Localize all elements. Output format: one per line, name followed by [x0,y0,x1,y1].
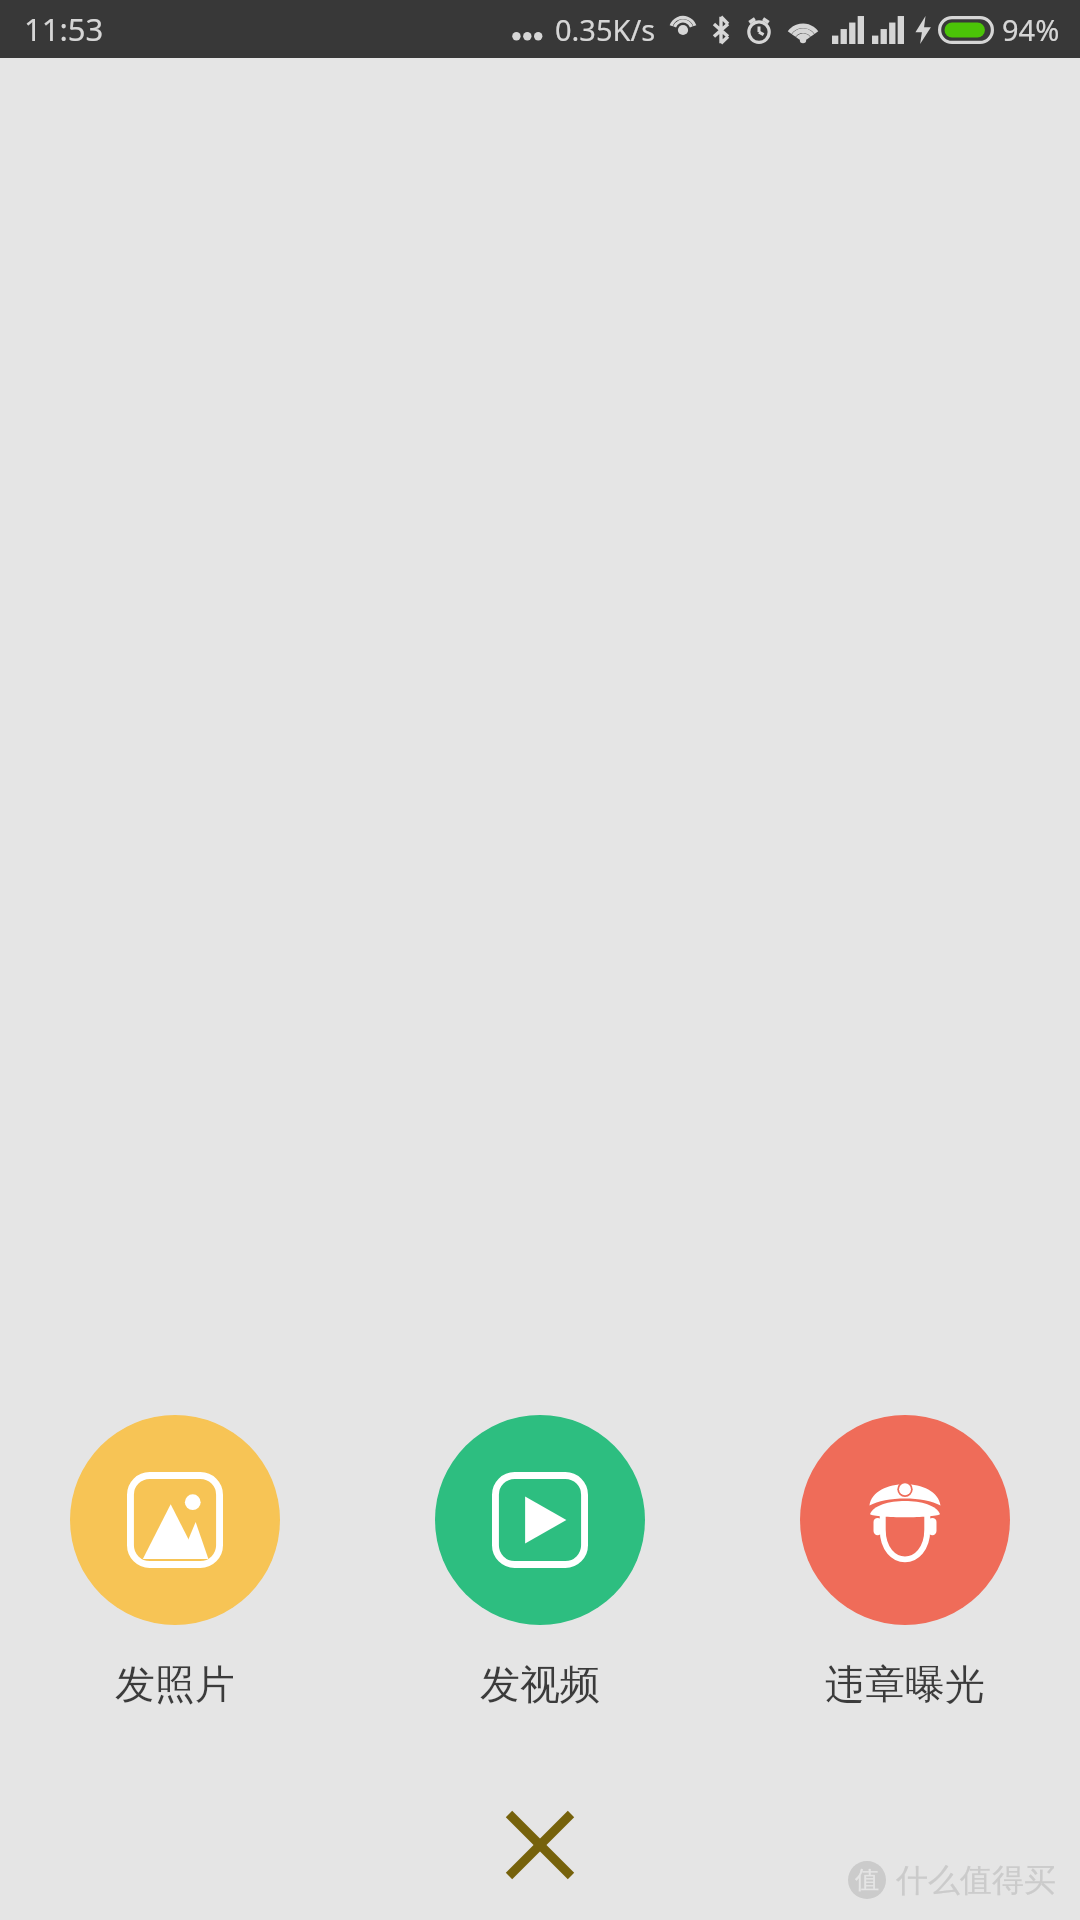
button[interactable]: Send video [425,1415,655,1709]
staticText: 发照片 [115,1659,235,1709]
staticText: 0.35K/s [555,10,656,49]
staticText: 94% [1002,10,1060,49]
button[interactable]: Close [480,1785,600,1905]
staticText: 发视频 [480,1659,600,1709]
staticText: 什么值得买 [896,1860,1056,1900]
button[interactable]: Report violation [790,1415,1020,1709]
button[interactable]: Send photo [60,1415,290,1709]
staticText: 值 [855,1865,879,1895]
staticText: 违章曝光 [825,1659,985,1709]
staticText: 11:53 [24,8,104,50]
